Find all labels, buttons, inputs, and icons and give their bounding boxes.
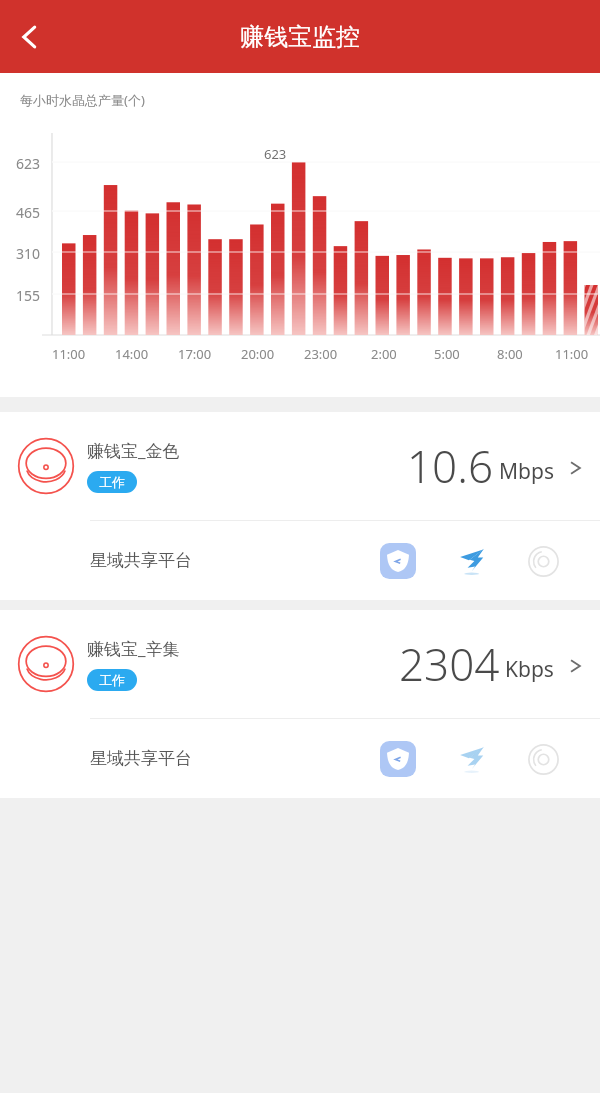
staticText: 23:00 <box>304 345 338 363</box>
staticText: 赚钱宝_辛集 <box>87 637 180 660</box>
staticText: 17:00 <box>178 345 212 363</box>
staticText: 623 <box>16 154 41 173</box>
staticText: 星域共享平台 <box>90 748 192 769</box>
staticText: 工作 <box>99 672 125 688</box>
staticText: 工作 <box>99 474 125 490</box>
staticText: 8:00 <box>497 345 523 363</box>
staticText: 5:00 <box>434 345 460 363</box>
staticText: Kbps <box>505 655 554 684</box>
button[interactable]: 星域共享平台 <box>0 719 600 798</box>
button[interactable]: 迅雷 <box>454 742 488 776</box>
staticText: 星域共享平台 <box>90 550 192 571</box>
staticText: 623 <box>264 145 287 163</box>
staticText: 155 <box>16 286 41 305</box>
button[interactable]: 光盘 <box>526 544 560 578</box>
button[interactable]: Back <box>0 7 60 67</box>
button[interactable]: 赚钱宝_辛集 <box>0 610 600 718</box>
button[interactable]: 迅雷 <box>454 544 488 578</box>
staticText: 14:00 <box>115 345 149 363</box>
button[interactable]: 安全防护 <box>380 741 416 777</box>
button[interactable]: 赚钱宝_金色 <box>0 412 600 520</box>
staticText: 10.6 <box>407 436 494 496</box>
button[interactable]: 光盘 <box>526 742 560 776</box>
staticText: 465 <box>16 203 41 222</box>
staticText: 每小时水晶总产量(个) <box>20 91 145 109</box>
button[interactable]: 星域共享平台 <box>0 521 600 600</box>
staticText: 2:00 <box>371 345 397 363</box>
staticText: 11:00 <box>52 345 86 363</box>
staticText: 310 <box>16 244 41 263</box>
staticText: 11:00 <box>555 345 589 363</box>
staticText: 2304 <box>399 634 500 694</box>
staticText: Mbps <box>499 457 554 486</box>
button[interactable]: 安全防护 <box>380 543 416 579</box>
staticText: 20:00 <box>241 345 275 363</box>
staticText: 赚钱宝_金色 <box>87 439 180 462</box>
staticText: 赚钱宝监控 <box>240 22 360 52</box>
